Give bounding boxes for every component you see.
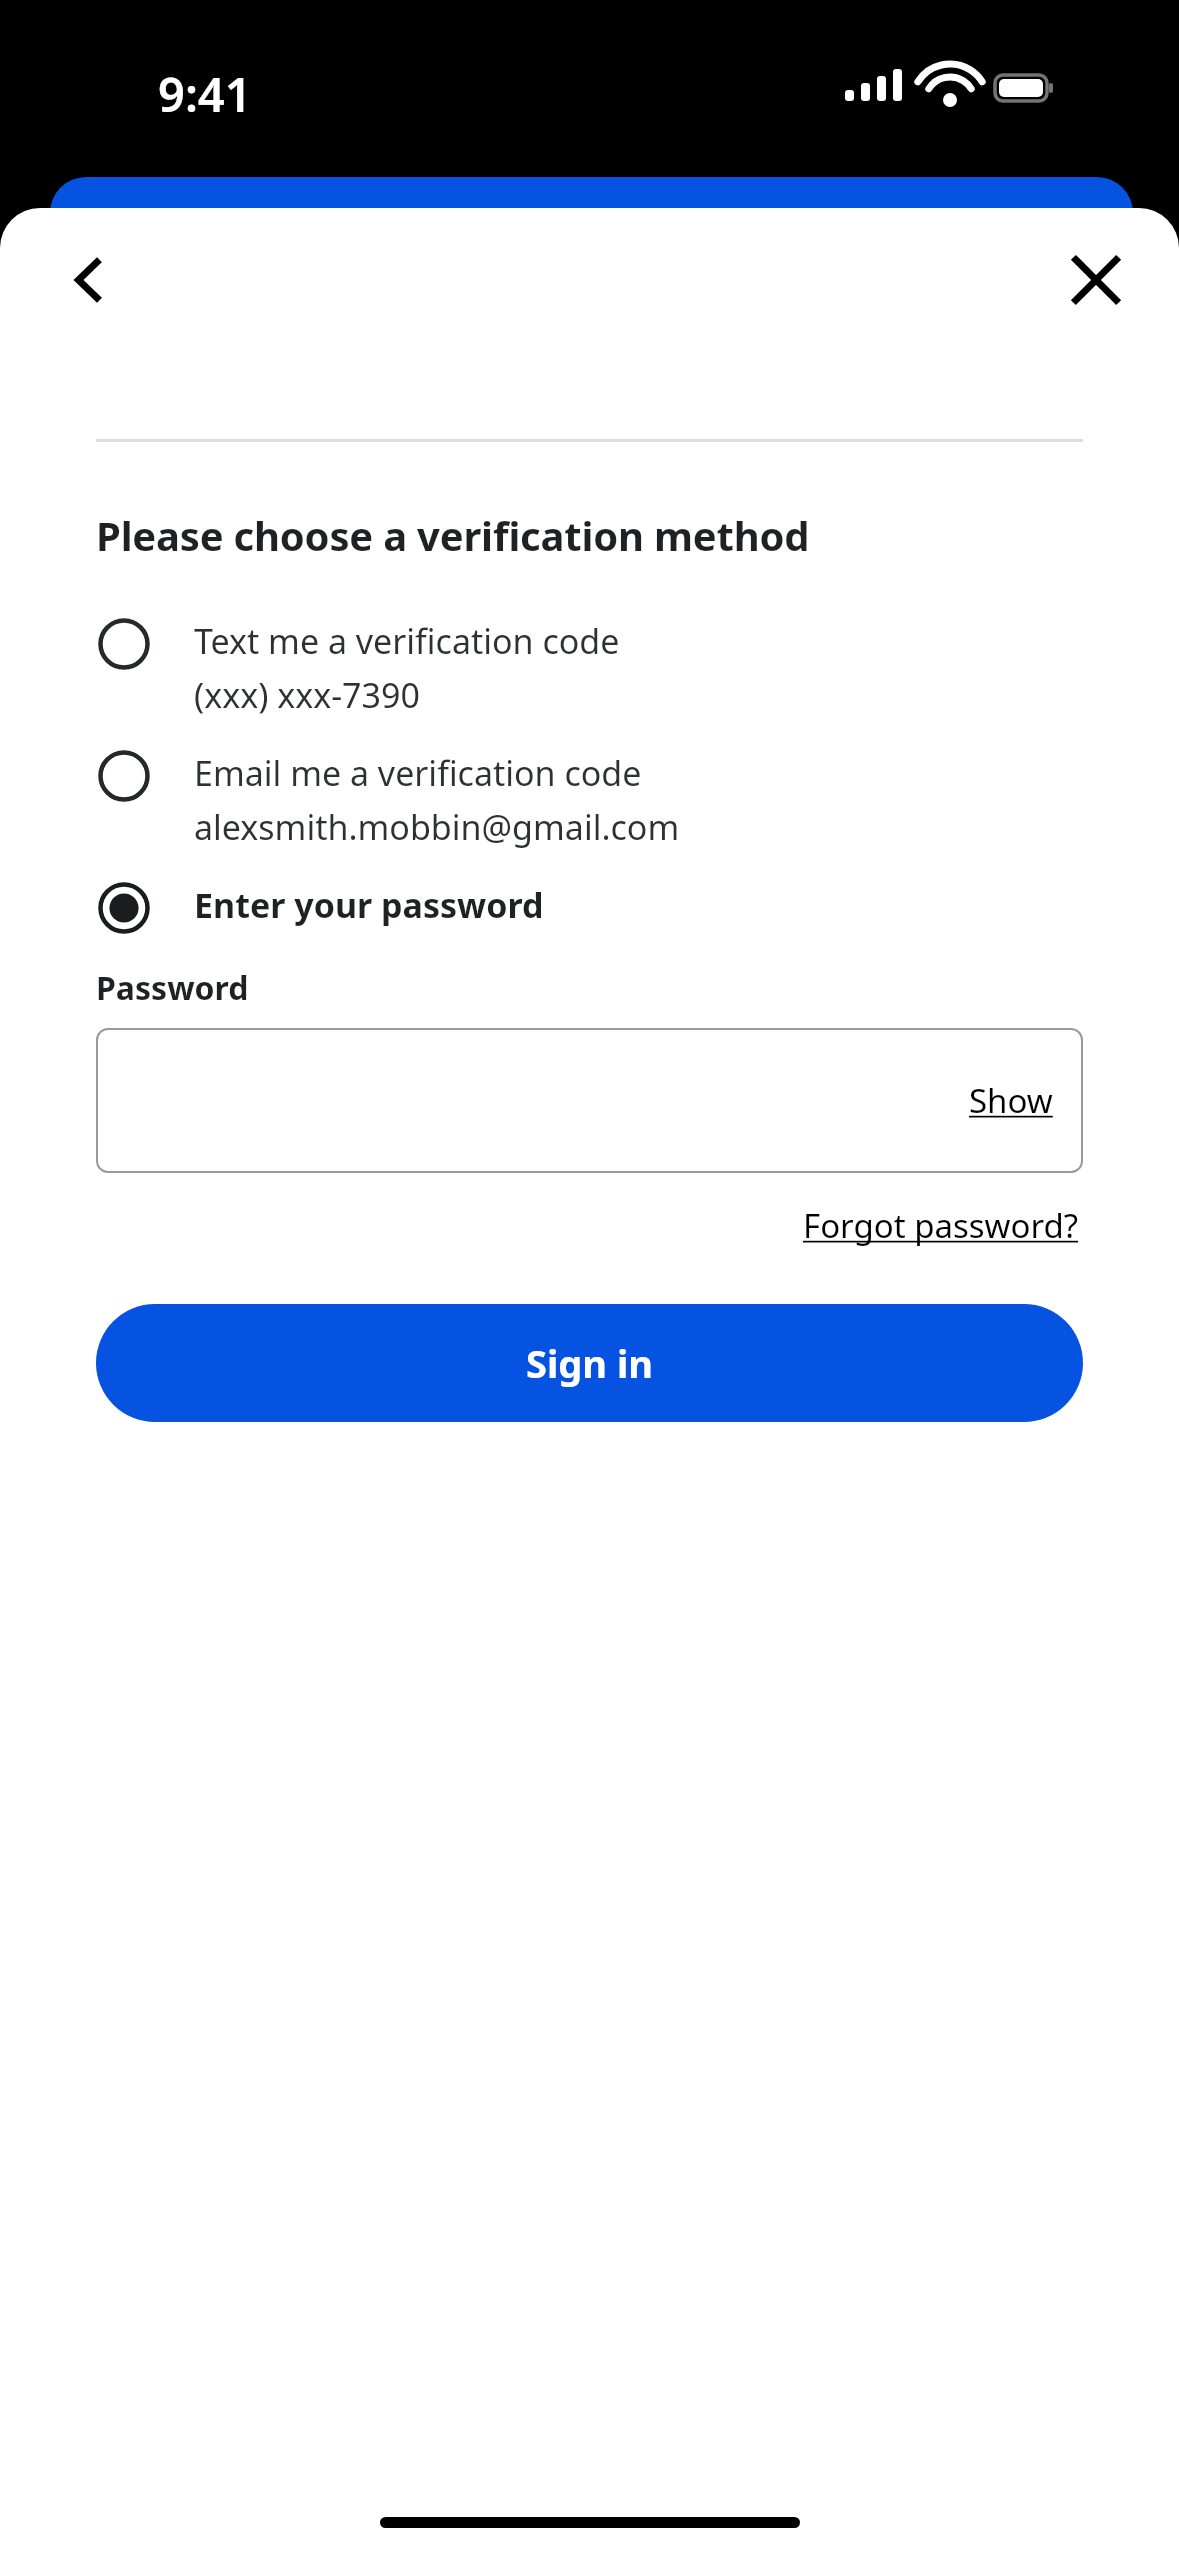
staticText: Show bbox=[969, 1078, 1053, 1123]
button[interactable]: Text me a verification code bbox=[96, 616, 1083, 716]
staticText: Forgot password? bbox=[803, 1203, 1079, 1248]
staticText: 9:41 bbox=[158, 62, 252, 126]
staticText: alexsmith.mobbin@gmail.com bbox=[194, 804, 680, 850]
button[interactable]: Email me a verification code bbox=[96, 748, 1083, 848]
button[interactable]: Back bbox=[40, 232, 136, 328]
button[interactable]: Close bbox=[1048, 232, 1144, 328]
button[interactable]: Sign in bbox=[96, 1304, 1083, 1422]
staticText: (xxx) xxx-7390 bbox=[194, 672, 420, 718]
button[interactable]: Show bbox=[96, 1028, 1083, 1173]
staticText: Password bbox=[96, 966, 249, 1010]
staticText: Please choose a verification method bbox=[96, 508, 810, 562]
staticText: Enter your password bbox=[194, 882, 544, 928]
button[interactable]: Show bbox=[963, 1072, 1059, 1129]
button[interactable]: Enter your password bbox=[96, 880, 1083, 936]
button[interactable]: Forgot password? bbox=[799, 1197, 1083, 1254]
staticText: Email me a verification code bbox=[194, 750, 642, 796]
staticText: Sign in bbox=[526, 1337, 653, 1389]
staticText: Text me a verification code bbox=[194, 618, 620, 664]
